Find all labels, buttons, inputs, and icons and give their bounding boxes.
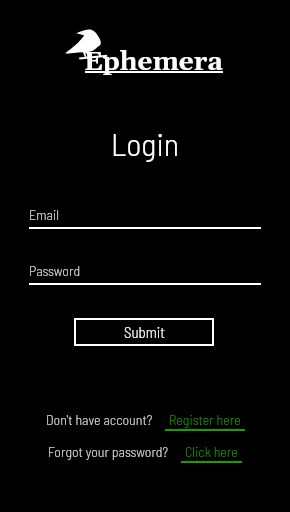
staticText: Submit	[124, 323, 165, 341]
button[interactable]: Register here	[165, 411, 245, 431]
staticText: Register here	[169, 411, 241, 428]
staticText: Password	[29, 262, 81, 279]
staticText: Forgot your password?	[48, 443, 169, 460]
other: Ephemera logo	[64, 28, 108, 59]
staticText: Email	[29, 206, 59, 223]
staticText: Don't have account?	[46, 411, 153, 428]
staticText: Click here	[185, 443, 238, 460]
staticText: Login	[0, 124, 290, 162]
staticText: Ephemera	[84, 46, 223, 79]
button[interactable]: Click here	[181, 443, 242, 463]
button[interactable]: Submit	[74, 318, 214, 346]
